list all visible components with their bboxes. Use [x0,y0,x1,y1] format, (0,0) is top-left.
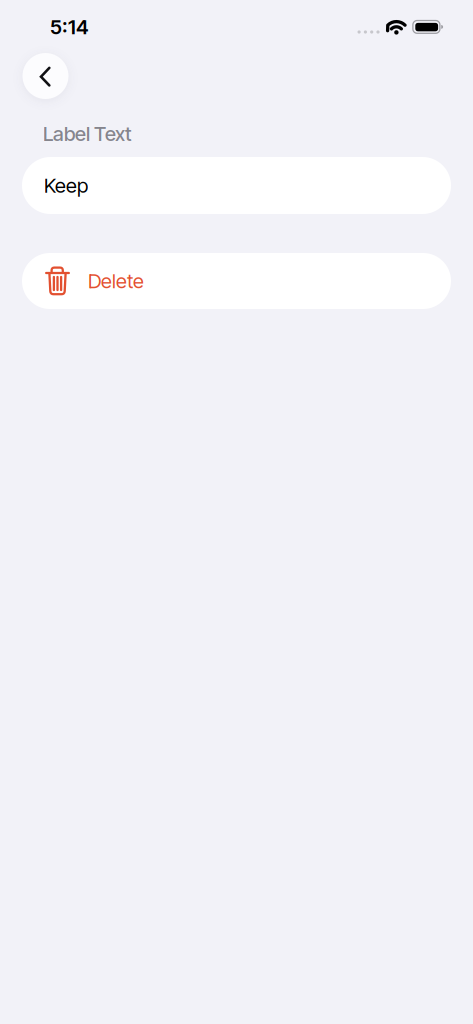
staticText: Delete [88,269,144,293]
button[interactable]: Back [22,53,68,99]
staticText: 5:14 [50,15,89,39]
button[interactable]: Keep [22,157,451,214]
button[interactable]: Delete [22,253,451,309]
staticText: Label Text [43,121,132,146]
staticText: Keep [44,173,88,198]
